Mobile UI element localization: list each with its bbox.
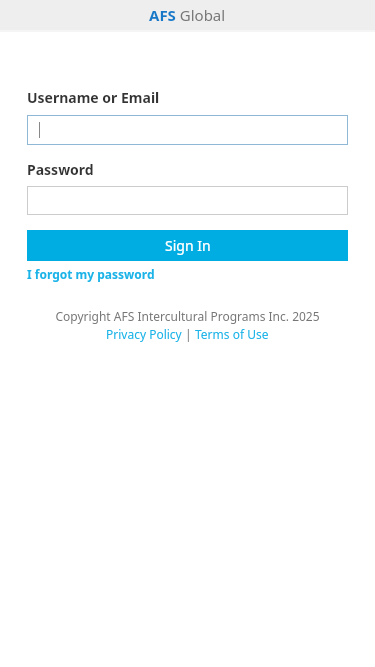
staticText: Sign In	[165, 236, 211, 255]
button[interactable]: Privacy Policy	[106, 326, 182, 342]
staticText: I forgot my password	[27, 266, 155, 282]
staticText: Terms of Use	[195, 326, 269, 342]
staticText: Username or Email	[27, 88, 160, 107]
button[interactable]: Sign In	[27, 230, 348, 261]
button[interactable]: Password input	[27, 186, 348, 215]
staticText: Privacy Policy	[106, 326, 182, 342]
staticText: |	[182, 326, 195, 342]
staticText: Password	[27, 160, 94, 179]
staticText: Copyright AFS Intercultural Programs Inc…	[55, 308, 320, 324]
staticText: AFS Global	[149, 5, 226, 25]
button[interactable]: Username or Email input	[27, 115, 348, 145]
button[interactable]: Terms of Use	[195, 326, 269, 342]
button[interactable]: I forgot my password	[27, 266, 155, 282]
